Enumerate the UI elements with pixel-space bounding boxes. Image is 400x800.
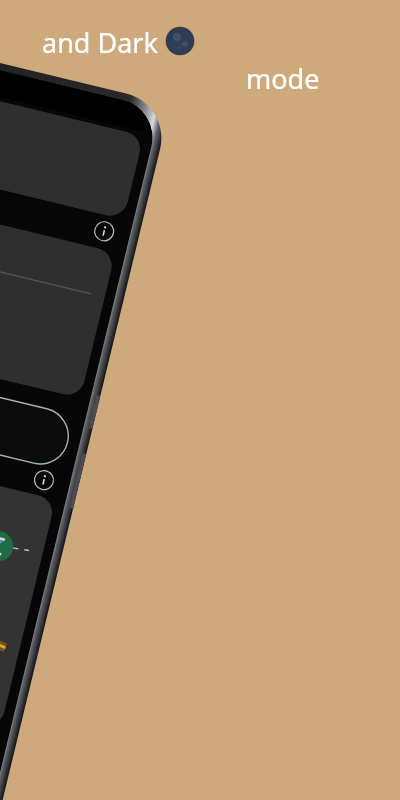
button[interactable]: Caffeine tracker dark mode promo <box>0 0 400 800</box>
